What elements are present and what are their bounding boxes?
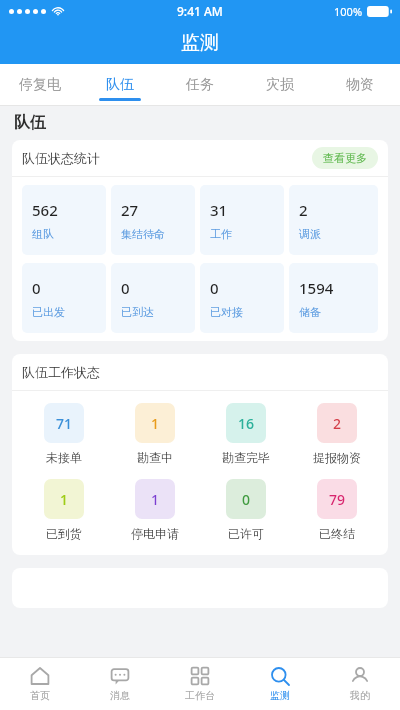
button[interactable]: 1 [109,403,200,465]
staticText: 组队 [32,227,54,241]
staticText: 监测 [181,31,219,55]
staticText: 队伍工作状态 [22,364,100,380]
staticText: 已到货 [46,526,82,541]
staticText: 0 [121,278,130,298]
staticText: 工作台 [185,689,215,702]
staticText: 灾损 [266,76,294,94]
staticText: 27 [121,200,139,220]
staticText: 已到达 [121,305,154,319]
button[interactable]: 27 [111,185,195,255]
staticText: 队伍 [106,76,134,94]
button[interactable]: 79 [291,479,382,541]
staticText: 勘查完毕 [222,450,270,465]
button[interactable]: 首页 [0,657,80,710]
staticText: 查看更多 [323,151,367,165]
button[interactable]: 562 [22,185,106,255]
staticText: 31 [210,200,228,220]
staticText: 停电申请 [131,526,179,541]
staticText: 已许可 [228,526,264,541]
staticText: 物资 [346,76,374,94]
staticText: 71 [56,414,73,433]
staticText: 队伍 [14,113,46,133]
staticText: 1 [151,414,160,433]
staticText: 100% [334,4,363,19]
staticText: 已对接 [210,305,243,319]
button[interactable]: 查看更多 [312,147,378,169]
staticText: 我的 [350,689,370,702]
button[interactable]: 灾损 [240,64,320,106]
staticText: 停复电 [19,76,61,94]
staticText: 已出发 [32,305,65,319]
button[interactable]: 71 [18,403,109,465]
staticText: 1 [60,490,69,509]
staticText: 562 [32,200,58,220]
button[interactable]: 1 [18,479,109,541]
button[interactable]: 16 [200,403,291,465]
staticText: 工作 [210,227,232,241]
button[interactable]: 监测 [240,657,320,710]
staticText: 16 [238,414,255,433]
staticText: 首页 [30,689,50,702]
staticText: 9:41 AM [177,3,223,19]
staticText: 79 [329,490,346,509]
staticText: 储备 [299,305,321,319]
staticText: 监测 [270,689,290,702]
staticText: 提报物资 [313,450,361,465]
button[interactable]: 0 [111,263,195,333]
button[interactable]: 消息 [80,657,160,710]
staticText: 2 [333,414,342,433]
staticText: 消息 [110,689,130,702]
button[interactable]: 2 [289,185,378,255]
button[interactable]: 31 [200,185,284,255]
staticText: 任务 [186,76,214,94]
staticText: 0 [242,490,251,509]
button[interactable]: 队伍 [80,64,160,106]
staticText: 调派 [299,227,321,241]
button[interactable]: 物资 [320,64,400,106]
staticText: 0 [210,278,219,298]
staticText: 1594 [299,278,334,298]
staticText: 集结待命 [121,227,165,241]
staticText: 队伍状态统计 [22,150,100,166]
button[interactable]: 任务 [160,64,240,106]
staticText: 1 [151,490,160,509]
button[interactable]: 2 [291,403,382,465]
button[interactable]: 工作台 [160,657,240,710]
staticText: 0 [32,278,41,298]
staticText: 未接单 [46,450,82,465]
staticText: 已终结 [319,526,355,541]
button[interactable]: 0 [200,479,291,541]
button[interactable]: 1594 [289,263,378,333]
staticText: 勘查中 [137,450,173,465]
button[interactable]: 停复电 [0,64,80,106]
button[interactable]: 0 [200,263,284,333]
button[interactable]: 0 [22,263,106,333]
button[interactable]: 我的 [320,657,400,710]
button[interactable]: 1 [109,479,200,541]
staticText: 2 [299,200,308,220]
